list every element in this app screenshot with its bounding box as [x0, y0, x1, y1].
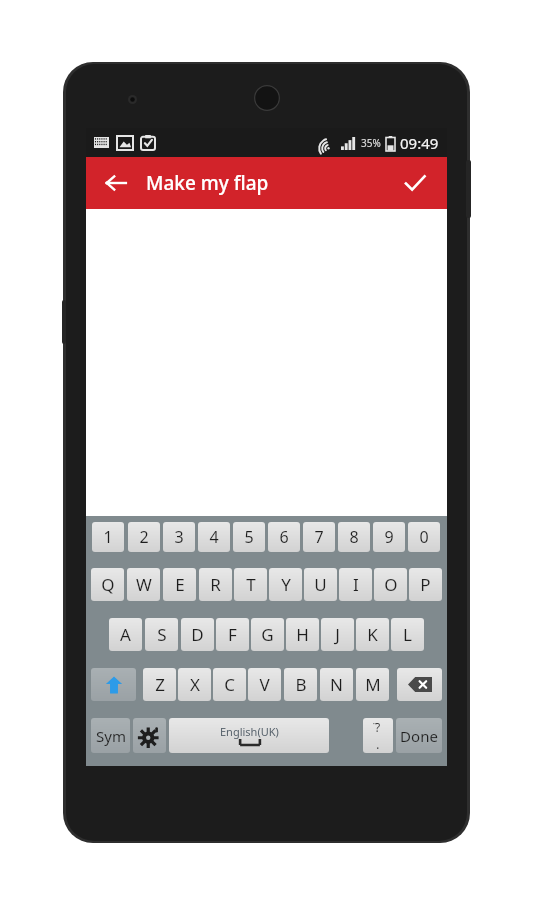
- staticText: X: [190, 673, 200, 696]
- button[interactable]: Settings: [133, 718, 166, 753]
- staticText: O: [384, 573, 398, 596]
- button[interactable]: Done: [397, 165, 433, 201]
- staticText: Y: [281, 573, 291, 596]
- staticText: 2: [139, 526, 149, 548]
- button[interactable]: 7: [303, 522, 335, 552]
- button[interactable]: L: [391, 618, 424, 651]
- staticText: 3: [174, 526, 184, 548]
- staticText: 09:49: [400, 133, 439, 153]
- button[interactable]: C: [213, 668, 246, 701]
- staticText: 0: [419, 526, 429, 548]
- staticText: L: [403, 623, 412, 646]
- staticText: 8: [349, 526, 359, 548]
- button[interactable]: Sym: [91, 718, 130, 753]
- button[interactable]: V: [248, 668, 281, 701]
- button[interactable]: G: [251, 618, 284, 651]
- button[interactable]: J: [321, 618, 354, 651]
- staticText: 1: [103, 526, 113, 548]
- staticText: P: [420, 573, 431, 596]
- button[interactable]: 0: [408, 522, 440, 552]
- staticText: 4: [209, 526, 219, 548]
- button[interactable]: I: [339, 568, 372, 601]
- staticText: B: [295, 673, 307, 696]
- staticText: I: [353, 573, 359, 596]
- button[interactable]: 5: [233, 522, 265, 552]
- staticText: N: [330, 673, 343, 696]
- button[interactable]: K: [356, 618, 389, 651]
- button[interactable]: S: [145, 618, 178, 651]
- staticText: C: [224, 673, 235, 696]
- button[interactable]: Space: [169, 718, 329, 753]
- staticText: S: [157, 623, 167, 646]
- button[interactable]: M: [356, 668, 389, 701]
- staticText: D: [191, 623, 204, 646]
- button[interactable]: Y: [269, 568, 302, 601]
- button[interactable]: D: [181, 618, 214, 651]
- button[interactable]: E: [163, 568, 196, 601]
- button[interactable]: W: [127, 568, 160, 601]
- button[interactable]: 1: [92, 522, 124, 552]
- staticText: Done: [400, 726, 438, 746]
- staticText: .: [376, 735, 380, 753]
- button[interactable]: N: [320, 668, 353, 701]
- staticText: A: [120, 623, 131, 646]
- button[interactable]: B: [284, 668, 317, 701]
- button[interactable]: Z: [143, 668, 176, 701]
- button[interactable]: H: [286, 618, 319, 651]
- staticText: 9: [384, 526, 394, 548]
- button[interactable]: Shift: [91, 668, 136, 701]
- staticText: J: [335, 623, 340, 646]
- staticText: Sym: [96, 726, 126, 746]
- button[interactable]: 4: [198, 522, 230, 552]
- staticText: G: [261, 623, 274, 646]
- staticText: English(UK): [220, 724, 279, 739]
- staticText: F: [228, 623, 237, 646]
- staticText: Make my flap: [146, 170, 269, 196]
- staticText: ̈?: [375, 719, 381, 735]
- button[interactable]: R: [199, 568, 232, 601]
- button[interactable]: O: [374, 568, 407, 601]
- button[interactable]: 9: [373, 522, 405, 552]
- button[interactable]: F: [216, 618, 249, 651]
- button[interactable]: T: [234, 568, 267, 601]
- button[interactable]: Back: [98, 165, 134, 201]
- staticText: E: [175, 573, 185, 596]
- staticText: T: [246, 573, 256, 596]
- staticText: H: [296, 623, 309, 646]
- button[interactable]: A: [109, 618, 142, 651]
- button[interactable]: 3: [163, 522, 195, 552]
- staticText: 35%: [361, 136, 381, 150]
- staticText: 5: [244, 526, 254, 548]
- staticText: V: [259, 673, 270, 696]
- staticText: Z: [155, 673, 165, 696]
- button[interactable]: Punctuation: [363, 718, 393, 753]
- button[interactable]: P: [409, 568, 442, 601]
- staticText: W: [136, 573, 152, 596]
- button[interactable]: Q: [91, 568, 124, 601]
- staticText: R: [210, 573, 221, 596]
- button[interactable]: 2: [128, 522, 160, 552]
- staticText: 6: [279, 526, 289, 548]
- button[interactable]: Backspace: [397, 668, 442, 701]
- staticText: K: [367, 623, 378, 646]
- button[interactable]: U: [304, 568, 337, 601]
- button[interactable]: 8: [338, 522, 370, 552]
- button[interactable]: Done: [396, 718, 442, 753]
- button[interactable]: 6: [268, 522, 300, 552]
- staticText: U: [314, 573, 327, 596]
- staticText: 7: [314, 526, 324, 548]
- staticText: M: [365, 673, 381, 696]
- button[interactable]: X: [178, 668, 211, 701]
- staticText: Q: [101, 573, 115, 596]
